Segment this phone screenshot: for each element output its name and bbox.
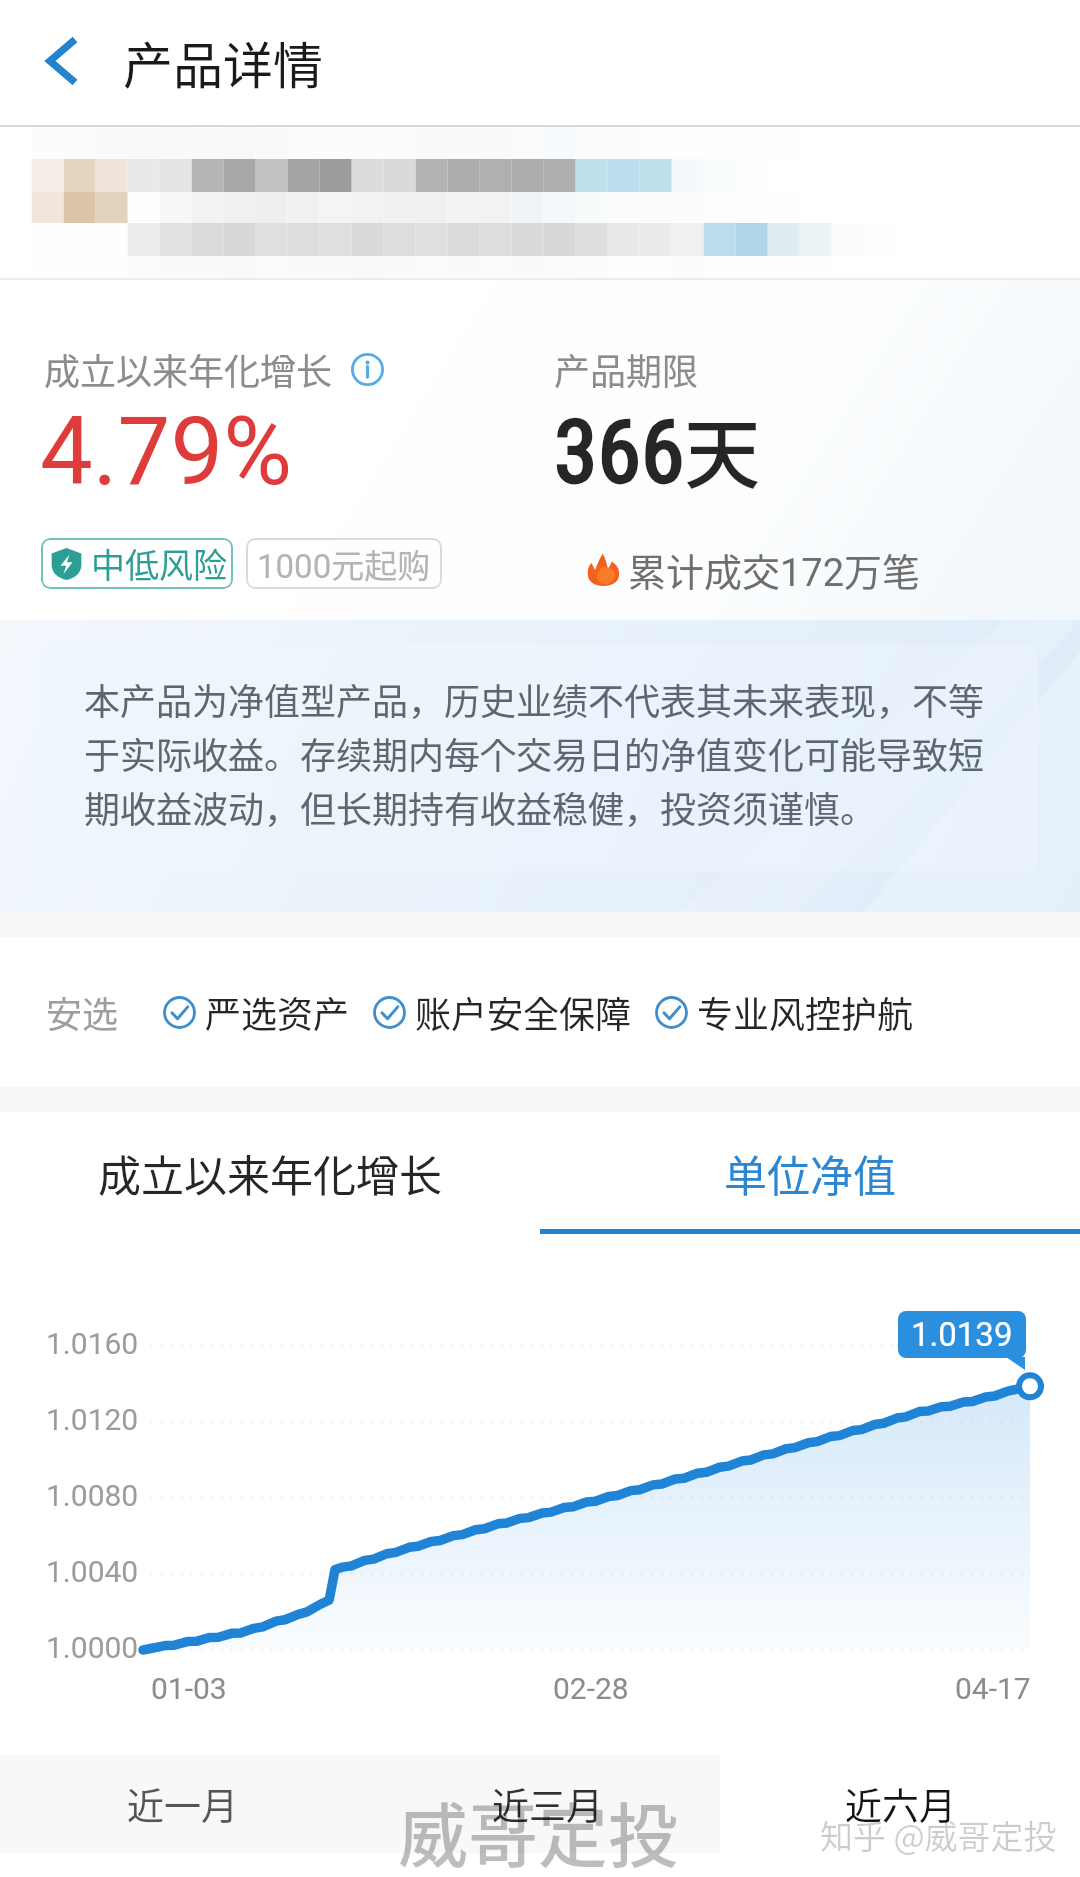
button[interactable]: 中低风险 xyxy=(41,538,233,589)
staticText: 04-17 xyxy=(955,1671,1031,1706)
button[interactable]: 收益说明 xyxy=(350,352,384,386)
staticText: 366天 xyxy=(554,394,761,504)
button[interactable]: 近六月 xyxy=(845,1777,956,1831)
staticText: 严选资产 xyxy=(205,986,350,1038)
staticText: 01-03 xyxy=(151,1671,227,1706)
staticText: 知乎 @威哥定投 xyxy=(820,1811,1057,1859)
staticText: 02-28 xyxy=(553,1671,629,1706)
staticText: 产品详情 xyxy=(123,26,323,98)
staticText: 账户安全保障 xyxy=(415,986,632,1038)
staticText: 产品期限 xyxy=(554,343,699,395)
button[interactable]: 单位净值 xyxy=(540,1112,1080,1234)
staticText: 1.0139 xyxy=(911,1315,1013,1354)
staticText: 1.0120 xyxy=(46,1402,139,1437)
staticText: 单位净值 xyxy=(724,1142,896,1204)
staticText: 成立以来年化增长 xyxy=(44,343,333,395)
staticText: 1.0000 xyxy=(46,1630,139,1665)
button[interactable]: 严选资产 xyxy=(163,986,350,1038)
button[interactable]: 账户安全保障 xyxy=(373,986,632,1038)
button[interactable]: 1000元起购 xyxy=(246,538,442,589)
staticText: 累计成交172万笔 xyxy=(628,542,921,597)
button[interactable]: Back xyxy=(17,16,107,106)
staticText: 1.0160 xyxy=(46,1326,139,1361)
staticText: 1.0040 xyxy=(46,1554,139,1589)
staticText: 成立以来年化增长 xyxy=(98,1142,442,1204)
button[interactable]: 专业风控护航 xyxy=(655,986,914,1038)
staticText: 安选 xyxy=(46,986,119,1038)
staticText: 1.0080 xyxy=(46,1478,139,1513)
button[interactable]: 成立以来年化增长 xyxy=(0,1112,540,1234)
staticText: 威哥定投 xyxy=(398,1781,678,1877)
button[interactable]: 近三月 xyxy=(492,1777,603,1831)
staticText: 1000元起购 xyxy=(257,540,431,588)
staticText: 4.79% xyxy=(40,397,293,507)
button[interactable]: 近一月 xyxy=(127,1777,238,1831)
staticText: 本产品为净值型产品，历史业绩不代表其未来表现，不等于实际收益。存续期内每个交易日… xyxy=(84,673,984,834)
staticText: 中低风险 xyxy=(91,539,227,588)
staticText: 专业风控护航 xyxy=(697,986,914,1038)
